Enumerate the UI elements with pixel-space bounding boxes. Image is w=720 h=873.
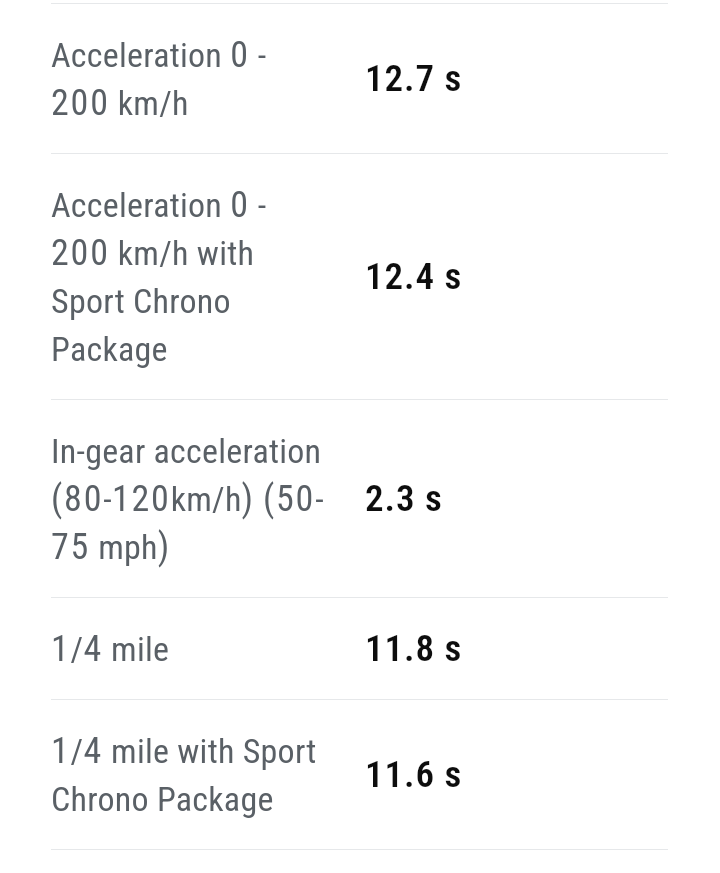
- staticText: 12.4 s: [365, 255, 463, 298]
- staticText: 2.3 s: [365, 477, 443, 520]
- button[interactable]: In-gear acceleration (80-120km/h) (50- 7…: [0, 400, 720, 597]
- button[interactable]: 1/4 mile with Sport Chrono Package: [0, 700, 720, 849]
- staticText: 1/4 mile with Sport Chrono Package: [51, 725, 339, 821]
- button[interactable]: 1/4 mile: [0, 598, 720, 699]
- staticText: 1/4 mile: [51, 623, 339, 671]
- button[interactable]: Acceleration 0 - 200 km/h: [0, 4, 720, 153]
- staticText: 11.8 s: [365, 627, 463, 670]
- staticText: Acceleration 0 - 200 km/h with Sport Chr…: [51, 179, 339, 371]
- staticText: Acceleration 0 - 200 km/h: [51, 29, 339, 125]
- staticText: 12.7 s: [365, 57, 463, 100]
- staticText: 11.6 s: [365, 753, 463, 796]
- button[interactable]: Acceleration 0 - 200 km/h with Sport Chr…: [0, 154, 720, 399]
- staticText: In-gear acceleration (80-120km/h) (50- 7…: [51, 425, 339, 569]
